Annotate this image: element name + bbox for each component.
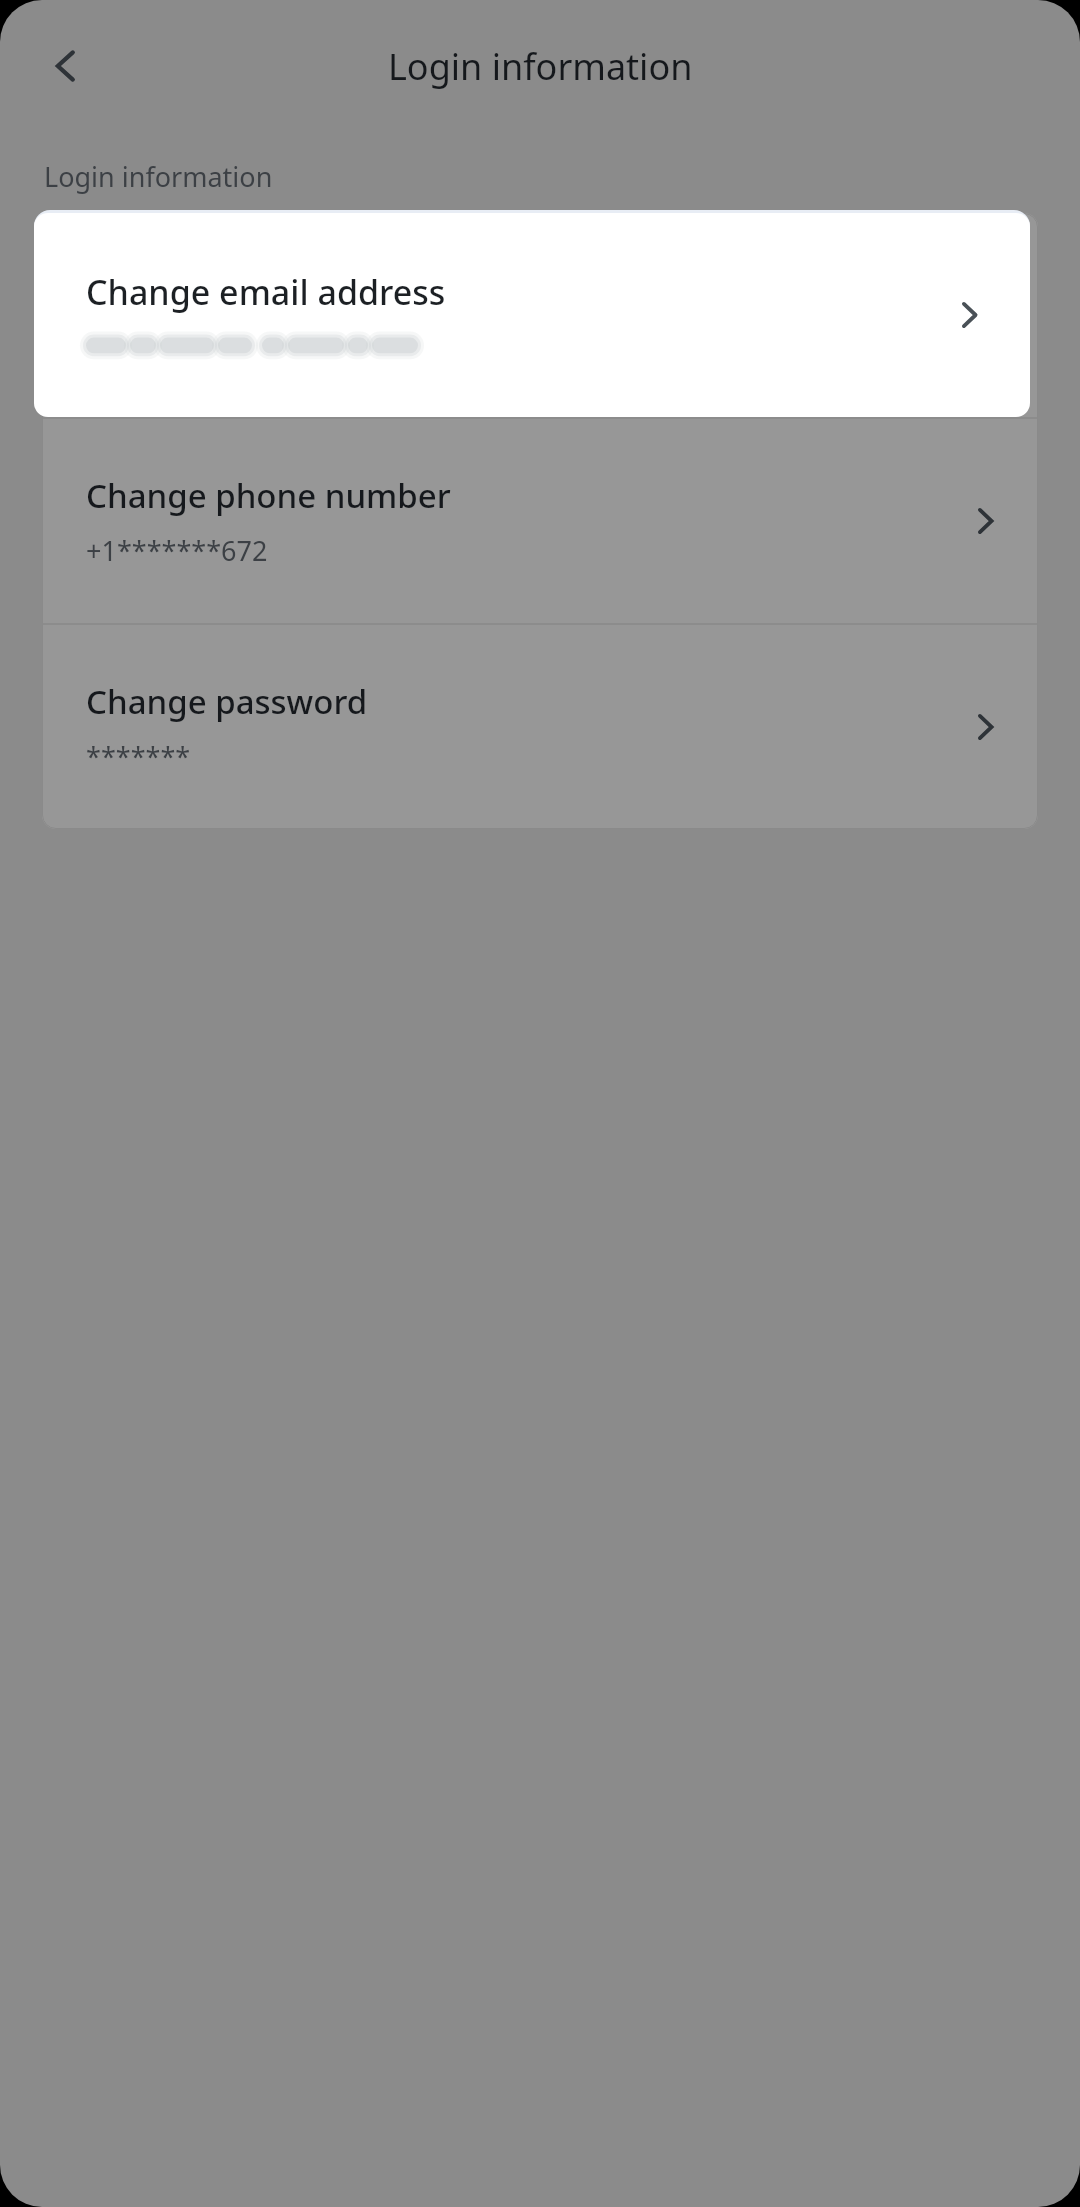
staticText: Change email address: [86, 269, 446, 315]
button[interactable]: Back: [24, 24, 108, 108]
staticText: Change phone number: [86, 473, 451, 518]
staticText: *******: [86, 738, 191, 775]
button[interactable]: Change email address: [34, 213, 1030, 417]
button[interactable]: Change password: [42, 625, 1038, 829]
staticText: Login information: [44, 158, 273, 195]
button[interactable]: Change phone number: [42, 419, 1038, 623]
staticText: Login information: [388, 42, 693, 91]
staticText: +1*******672: [86, 532, 268, 569]
staticText: Change password: [86, 679, 368, 724]
